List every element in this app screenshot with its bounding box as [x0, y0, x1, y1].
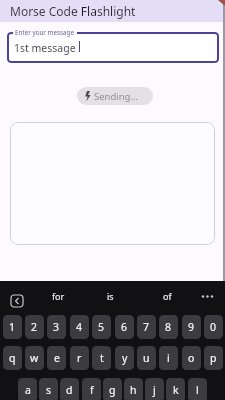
staticText: p	[210, 351, 217, 365]
button[interactable]: l	[188, 378, 207, 400]
staticText: l	[196, 383, 199, 397]
button[interactable]: o	[182, 346, 201, 370]
button[interactable]: e	[47, 346, 66, 370]
button[interactable]: 3	[47, 315, 66, 339]
button[interactable]: p	[204, 346, 223, 370]
staticText: e	[54, 351, 60, 365]
button[interactable]: 6	[115, 315, 134, 339]
staticText: d	[66, 383, 73, 397]
staticText: 7	[143, 320, 150, 334]
staticText: Enter your message	[15, 28, 75, 37]
staticText: 1	[9, 320, 16, 334]
staticText: 3	[53, 320, 60, 334]
staticText: Sending...	[94, 90, 139, 103]
button[interactable]: 8	[159, 315, 178, 339]
button[interactable]: r	[70, 346, 89, 370]
staticText: of	[163, 290, 172, 302]
button[interactable]: 1st message	[7, 32, 219, 63]
staticText: Morse Code Flashlight	[10, 3, 136, 19]
button[interactable]: j	[145, 378, 164, 400]
staticText: 6	[121, 320, 128, 334]
staticText: o	[188, 351, 195, 365]
staticText: j	[153, 383, 156, 397]
button[interactable]: h	[124, 378, 143, 400]
button[interactable]: d	[60, 378, 79, 400]
staticText: u	[143, 351, 150, 365]
staticText: 5	[98, 320, 105, 334]
button[interactable]: k	[166, 378, 185, 400]
button[interactable]: a	[18, 378, 37, 400]
button[interactable]: for	[36, 283, 80, 309]
staticText: y	[122, 351, 128, 365]
button[interactable]: q	[3, 346, 22, 370]
staticText: r	[77, 351, 82, 365]
button[interactable]	[6, 287, 28, 309]
staticText: 4	[76, 320, 83, 334]
staticText: 0	[210, 320, 217, 334]
staticText: q	[9, 351, 16, 365]
staticText: 9	[188, 320, 195, 334]
button[interactable]: 2	[25, 315, 44, 339]
staticText: k	[173, 383, 179, 397]
button[interactable]: 0	[204, 315, 223, 339]
staticText: f	[90, 383, 94, 397]
button[interactable]: 7	[137, 315, 156, 339]
button[interactable]: of	[145, 283, 189, 309]
button[interactable]: t	[92, 346, 111, 370]
staticText: g	[109, 383, 116, 397]
button[interactable]	[196, 287, 220, 309]
staticText: t	[100, 351, 104, 365]
staticText: w	[30, 351, 39, 365]
staticText: s	[46, 383, 52, 397]
button[interactable]: 1	[3, 315, 22, 339]
staticText: 2	[31, 320, 38, 334]
button[interactable]: 9	[182, 315, 201, 339]
staticText: is	[107, 290, 114, 302]
staticText: 1st message	[14, 41, 76, 55]
staticText: 8	[165, 320, 172, 334]
button[interactable]: g	[103, 378, 122, 400]
staticText: a	[25, 383, 31, 397]
staticText: i	[167, 351, 170, 365]
button[interactable]: i	[159, 346, 178, 370]
button[interactable]: u	[137, 346, 156, 370]
button[interactable]: s	[39, 378, 58, 400]
button[interactable]: y	[115, 346, 134, 370]
button[interactable]: f	[82, 378, 101, 400]
staticText: h	[130, 383, 137, 397]
button[interactable]: is	[88, 283, 132, 309]
button[interactable]: Sending...	[77, 87, 153, 105]
button[interactable]: w	[25, 346, 44, 370]
staticText: for	[52, 290, 65, 302]
button[interactable]: 5	[92, 315, 111, 339]
button[interactable]: 4	[70, 315, 89, 339]
